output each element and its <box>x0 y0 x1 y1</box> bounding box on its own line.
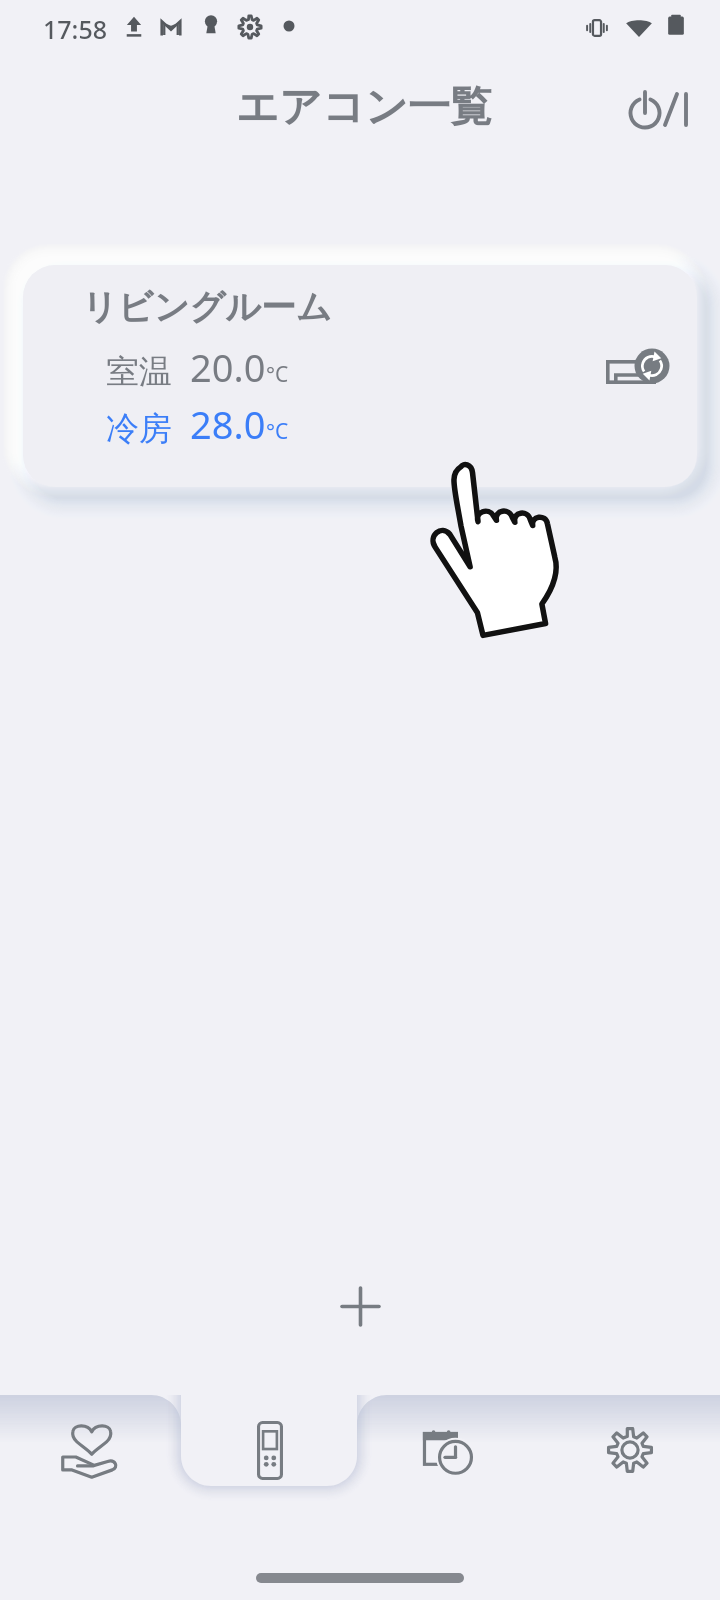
staticText: リビングルーム <box>82 285 332 329</box>
staticText: 冷房 <box>106 408 172 450</box>
button[interactable]: Schedule <box>360 1400 540 1500</box>
staticText: 28.0 <box>190 398 266 450</box>
staticText: エアコン一覧 <box>236 81 492 134</box>
button[interactable]: Favorites <box>0 1400 180 1500</box>
button[interactable]: Settings <box>540 1400 720 1500</box>
staticText: 20.0 <box>190 341 266 393</box>
button[interactable]: Power <box>614 80 696 136</box>
staticText: °C <box>266 417 289 446</box>
staticText: 17:58 <box>43 12 108 46</box>
staticText: 室温 <box>106 351 172 393</box>
staticText: °C <box>266 360 289 389</box>
button[interactable]: Add air conditioner <box>330 1276 390 1336</box>
button[interactable]: リビングルーム <box>23 265 697 487</box>
button[interactable]: Remote control <box>180 1400 360 1500</box>
